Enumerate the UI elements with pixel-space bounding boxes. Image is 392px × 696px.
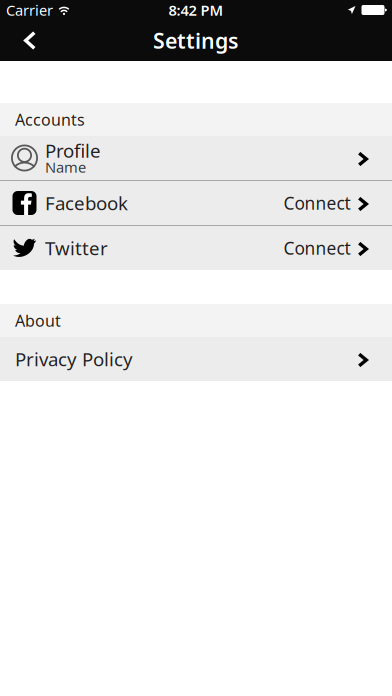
button[interactable]: Profile (0, 136, 392, 180)
staticText: Facebook (45, 191, 128, 215)
staticText: About (15, 310, 61, 331)
staticText: 8:42 PM (168, 0, 223, 20)
staticText: Profile (45, 138, 101, 163)
staticText: Twitter (45, 236, 108, 260)
staticText: Privacy Policy (15, 347, 133, 371)
staticText: Connect (283, 191, 350, 214)
staticText: Name (45, 157, 86, 177)
button[interactable]: Twitter (0, 226, 392, 270)
button[interactable]: Back (0, 20, 58, 61)
button[interactable]: Privacy Policy (0, 337, 392, 381)
button[interactable]: Facebook (0, 181, 392, 225)
staticText: Settings (153, 26, 239, 55)
staticText: Connect (283, 236, 350, 259)
staticText: Accounts (15, 109, 85, 130)
staticText: Carrier (6, 0, 53, 20)
